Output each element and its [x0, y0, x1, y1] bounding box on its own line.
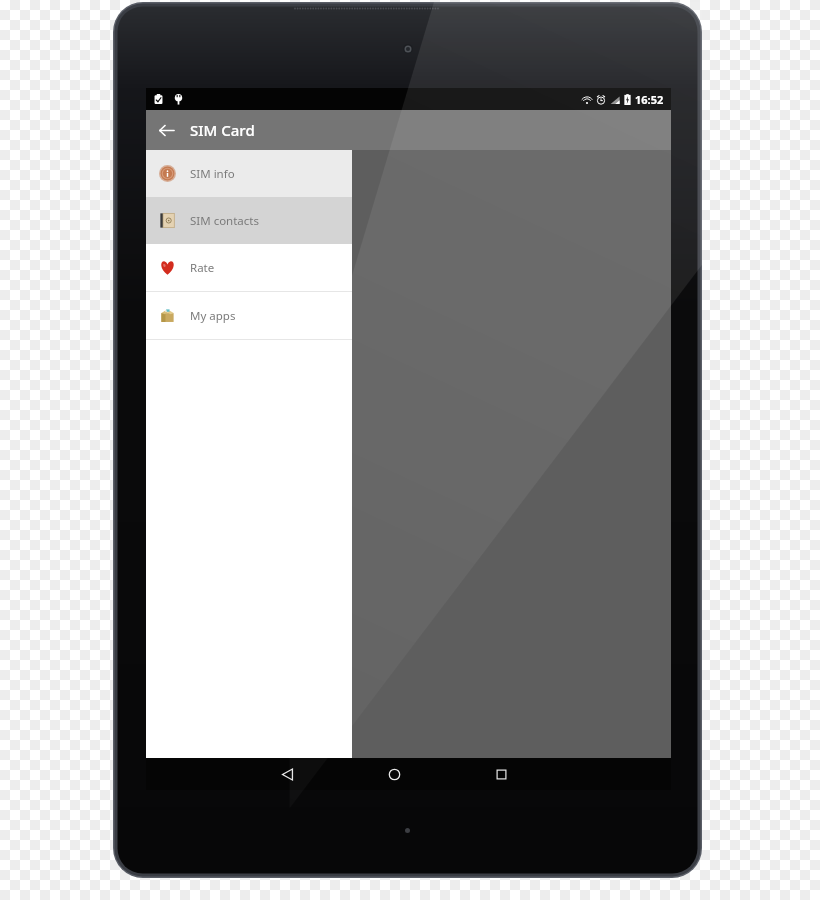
staticText: SIM Card	[190, 120, 255, 140]
button[interactable]: Home	[372, 758, 416, 790]
button[interactable]: My apps	[146, 292, 352, 339]
staticText: Rate	[190, 260, 215, 276]
staticText: SIM info	[190, 166, 235, 182]
button[interactable]: Rate	[146, 244, 352, 291]
staticText: SIM contacts	[190, 213, 259, 229]
button[interactable]: SIM contacts	[146, 197, 352, 244]
button[interactable]: Recent apps	[479, 758, 523, 790]
button[interactable]: Back	[265, 758, 309, 790]
staticText: 16:52	[635, 92, 664, 107]
staticText: My apps	[190, 308, 236, 324]
button[interactable]: Navigate up	[146, 110, 186, 150]
button[interactable]: SIM info	[146, 150, 352, 197]
